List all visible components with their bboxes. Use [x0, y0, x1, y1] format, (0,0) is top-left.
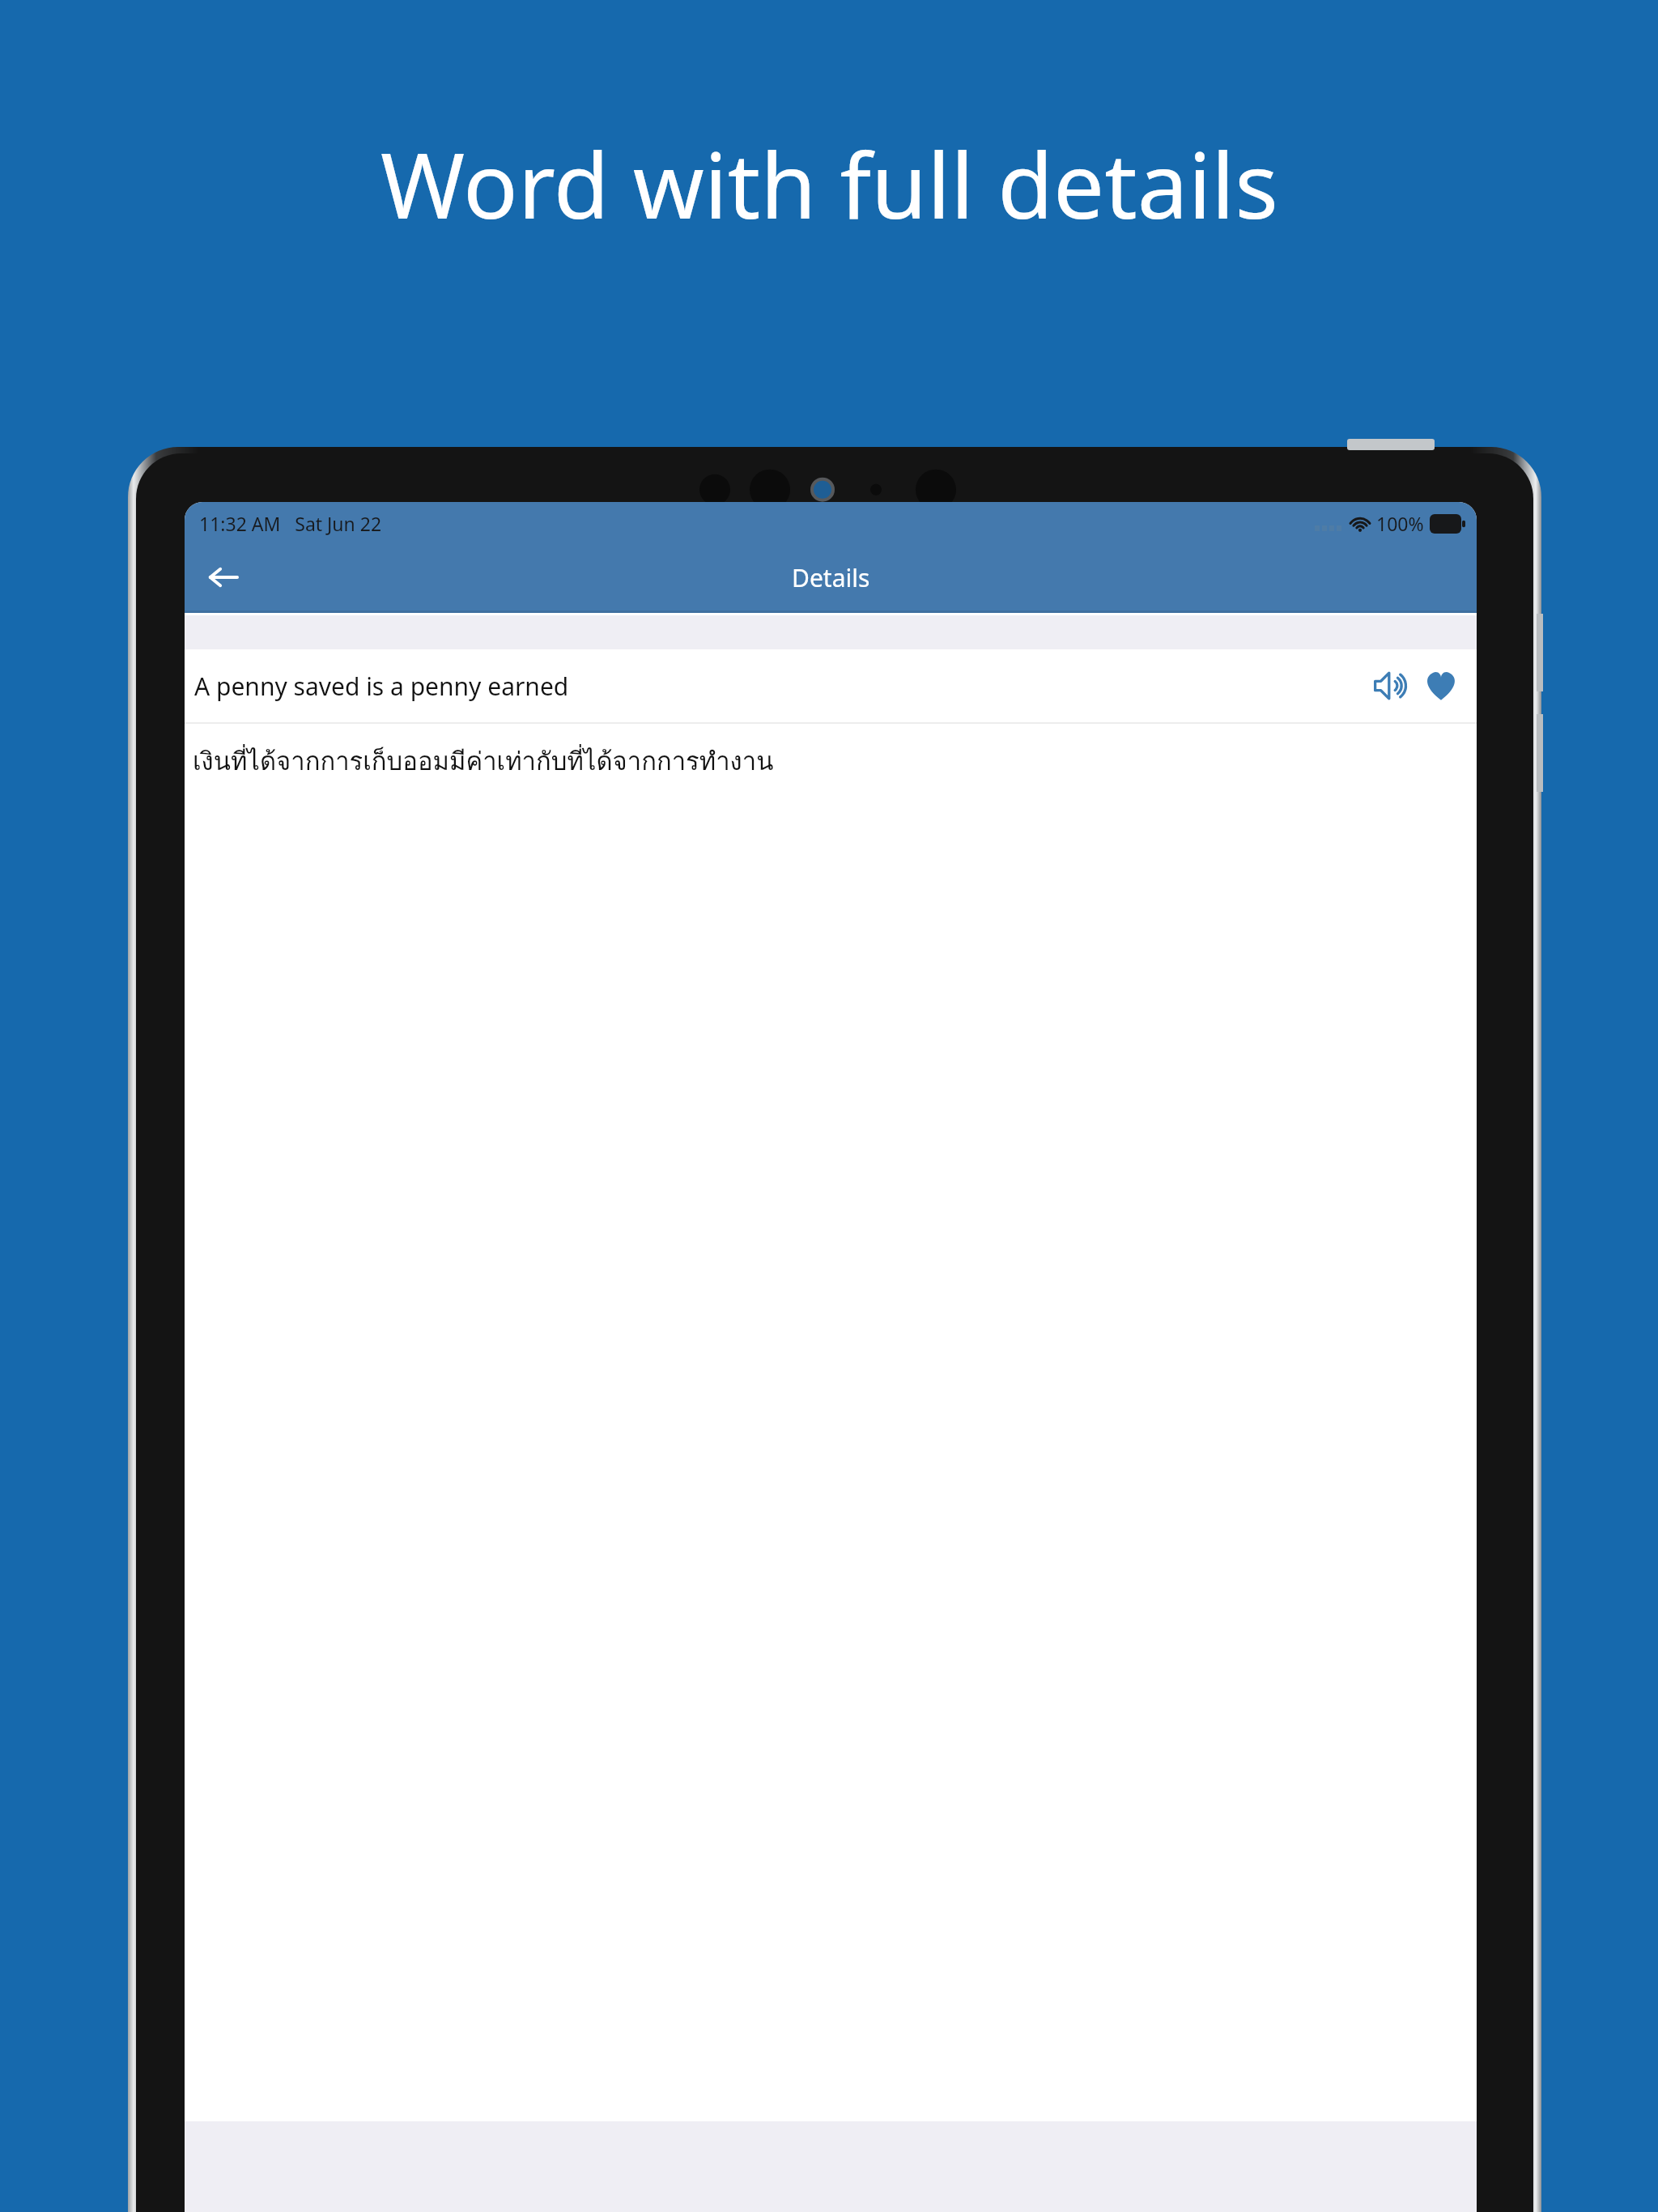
button[interactable]: Play pronunciation: [1368, 663, 1414, 708]
button[interactable]: Back: [193, 547, 254, 608]
staticText: 11:32 AM Sat Jun 22: [199, 511, 382, 536]
button[interactable]: A penny saved is a penny earned: [185, 649, 1477, 722]
staticText: 100%: [1376, 511, 1424, 536]
staticText: Word with full details: [380, 121, 1278, 245]
staticText: A penny saved is a penny earned: [194, 670, 569, 703]
button[interactable]: เงินที่ได้จากการเก็บออมมีค่าเท่ากับที่ได…: [185, 724, 1477, 797]
staticText: Details: [792, 561, 870, 594]
button[interactable]: Favourite: [1418, 663, 1464, 708]
staticText: เงินที่ได้จากการเก็บออมมีค่าเท่ากับที่ได…: [193, 741, 774, 781]
